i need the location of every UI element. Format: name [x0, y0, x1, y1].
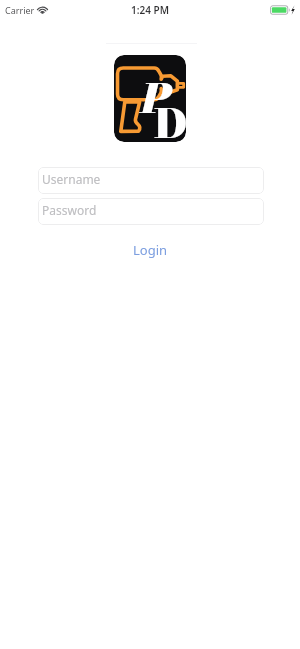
button[interactable]: Login [119, 238, 182, 262]
staticText: Carrier [5, 4, 35, 16]
staticText: P [141, 67, 172, 130]
button[interactable]: Password [38, 198, 264, 225]
staticText: 1:24 PM [131, 3, 169, 17]
staticText: Username [42, 171, 101, 187]
staticText: D [154, 92, 186, 142]
staticText: Password [42, 202, 97, 218]
button[interactable]: Username [38, 167, 264, 194]
staticText: Login [133, 241, 168, 259]
